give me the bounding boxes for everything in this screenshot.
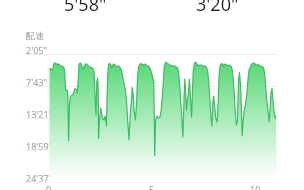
staticText: 0	[46, 183, 52, 190]
staticText: 18'59"	[26, 140, 53, 152]
staticText: 24'37"	[26, 172, 53, 184]
staticText: 配速	[26, 30, 44, 41]
staticText: 3'20"	[196, 0, 239, 17]
staticText: 10	[250, 183, 261, 190]
staticText: 5'58"	[64, 0, 107, 17]
staticText: 13'21"	[26, 108, 53, 120]
staticText: 5	[149, 183, 155, 190]
staticText: 2'05"	[26, 44, 48, 56]
staticText: 7'43"	[26, 76, 48, 88]
